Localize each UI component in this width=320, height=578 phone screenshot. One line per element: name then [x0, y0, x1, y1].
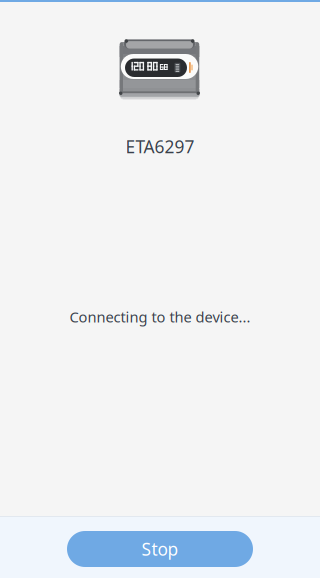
button[interactable]: Stop: [67, 531, 253, 567]
staticText: Stop: [141, 537, 178, 560]
staticText: ETA6297: [125, 135, 194, 158]
staticText: Connecting to the device...: [69, 307, 250, 326]
